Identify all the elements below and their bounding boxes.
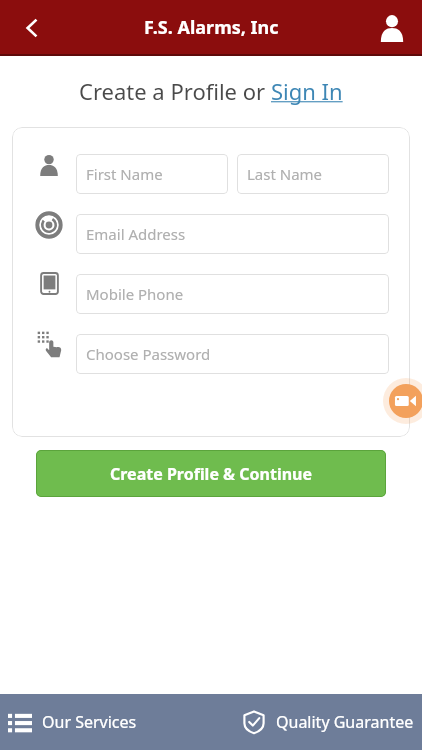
button[interactable]: Video chat: [383, 378, 422, 424]
button[interactable]: Back: [10, 6, 54, 50]
staticText: Choose Password: [86, 344, 211, 364]
button[interactable]: Mobile Phone: [76, 274, 389, 314]
button[interactable]: Our Services: [8, 710, 137, 734]
staticText: Sign In: [271, 76, 343, 106]
button[interactable]: Create Profile & Continue: [36, 450, 386, 497]
button[interactable]: Choose Password: [76, 334, 389, 374]
button[interactable]: Account: [370, 6, 414, 50]
button[interactable]: First Name: [76, 154, 228, 194]
staticText: Our Services: [42, 711, 137, 733]
staticText: F.S. Alarms, Inc: [144, 15, 279, 40]
staticText: Quality Guarantee: [276, 711, 414, 733]
staticText: Email Address: [86, 224, 186, 244]
staticText: Create a Profile or: [79, 76, 271, 106]
button[interactable]: Last Name: [237, 154, 389, 194]
button[interactable]: Email Address: [76, 214, 389, 254]
button[interactable]: Sign In: [271, 76, 343, 106]
staticText: Mobile Phone: [86, 284, 184, 304]
staticText: First Name: [86, 164, 163, 184]
staticText: Last Name: [247, 164, 323, 184]
staticText: Create Profile & Continue: [110, 463, 313, 485]
button[interactable]: Quality Guarantee: [242, 710, 414, 734]
